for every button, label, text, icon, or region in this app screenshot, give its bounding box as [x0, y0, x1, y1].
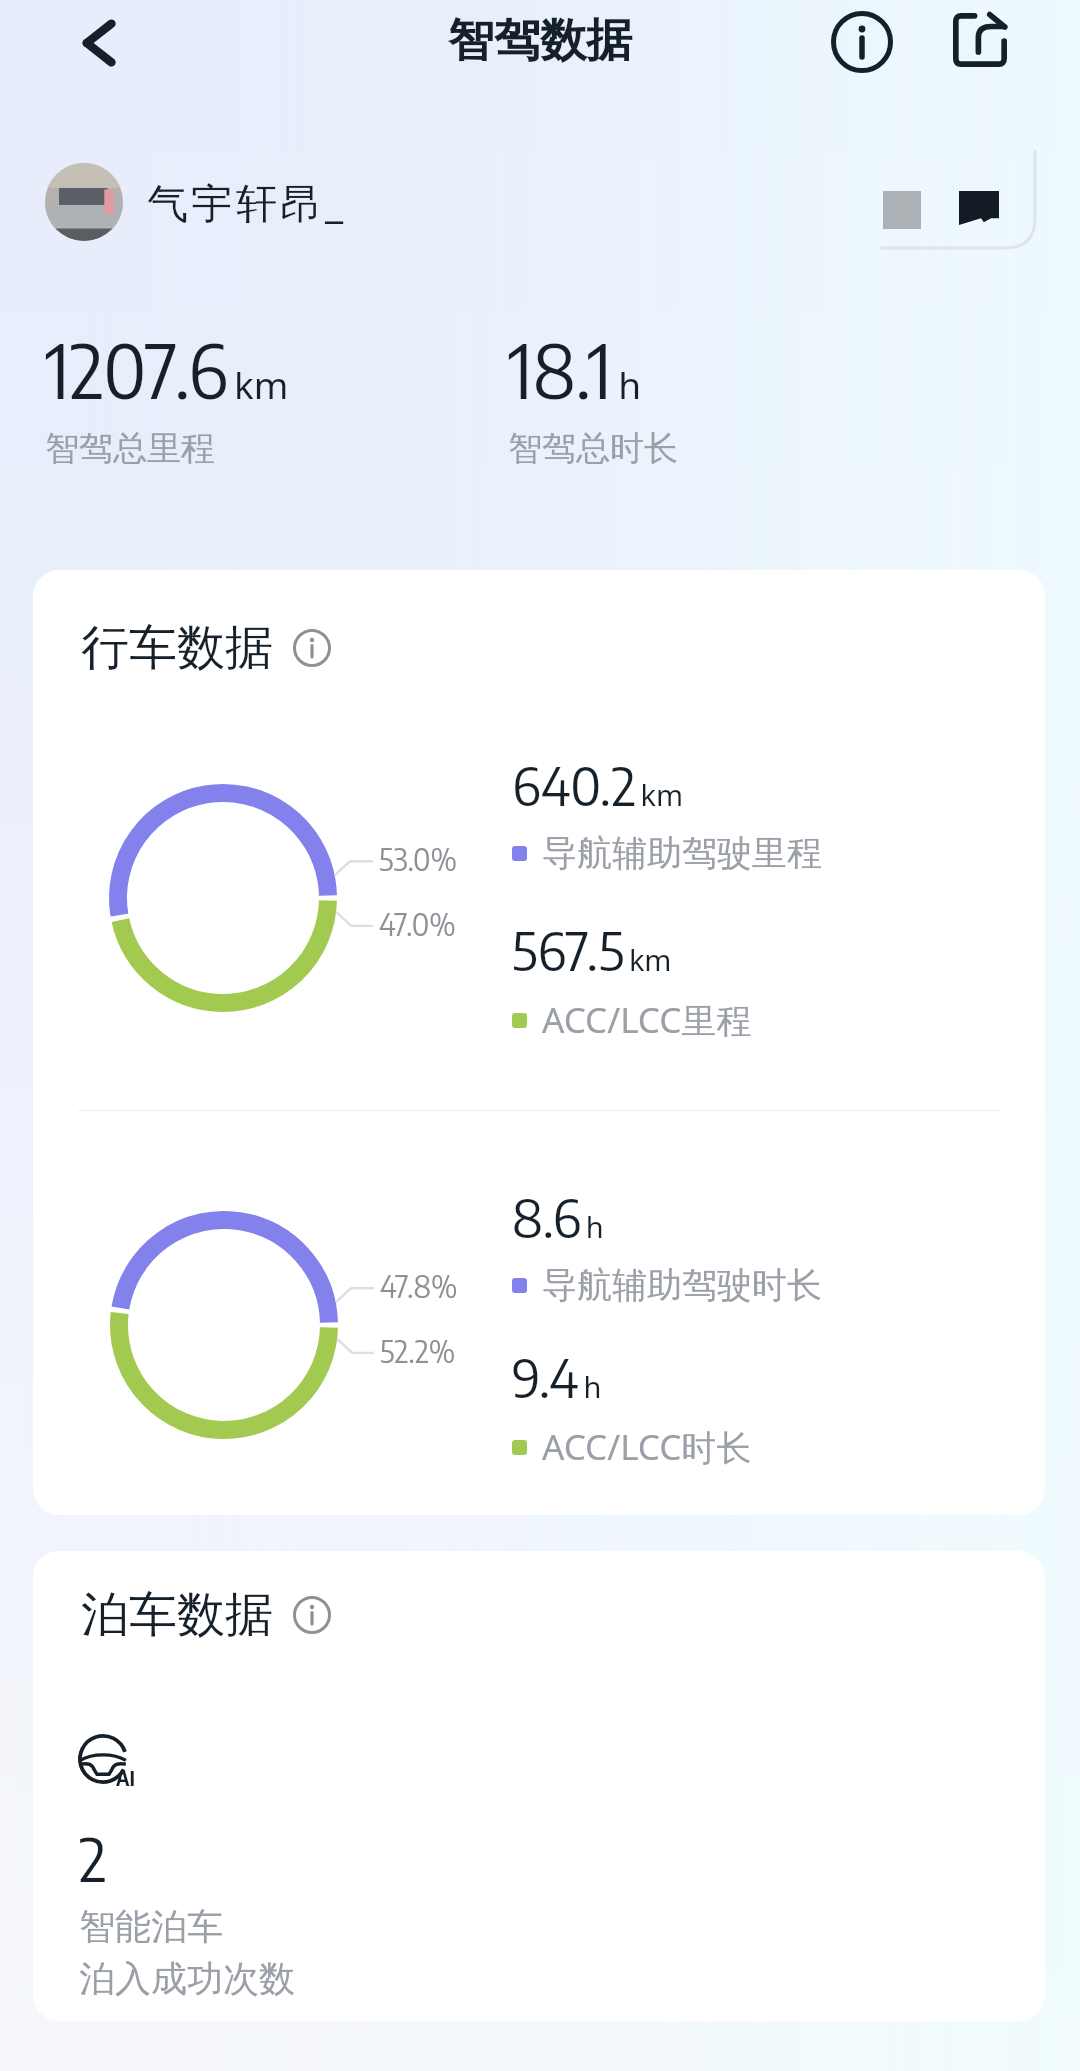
- button[interactable]: 气宇轩昂_: [45, 163, 347, 241]
- button[interactable]: Info: [291, 1594, 333, 1636]
- staticText: ACC/LCC时长: [542, 1423, 752, 1471]
- staticText: 智能泊车: [79, 1904, 223, 1949]
- staticText: 9.4 h: [512, 1343, 602, 1409]
- button[interactable]: Share: [948, 8, 1012, 72]
- staticText: AI: [116, 1765, 136, 1790]
- staticText: 泊车数据: [81, 1585, 273, 1645]
- staticText: 气宇轩昂_: [147, 174, 347, 230]
- staticText: ACC/LCC里程: [542, 996, 752, 1044]
- staticText: 47.8%: [380, 1267, 458, 1304]
- staticText: 智驾总里程: [45, 427, 215, 470]
- staticText: 行车数据: [81, 618, 273, 678]
- staticText: 52.2%: [380, 1332, 456, 1369]
- staticText: 1207.6 km: [45, 323, 289, 416]
- staticText: 2: [79, 1820, 107, 1895]
- staticText: 智驾总时长: [508, 427, 678, 470]
- staticText: 53.0%: [379, 840, 458, 877]
- staticText: 567.5 km: [512, 916, 672, 982]
- staticText: 47.0%: [379, 905, 456, 942]
- staticText: 智驾数据: [448, 12, 632, 70]
- button[interactable]: Back: [71, 14, 129, 72]
- button[interactable]: Info: [828, 8, 896, 76]
- staticText: 8.6 h: [512, 1183, 604, 1249]
- staticText: 导航辅助驾驶里程: [542, 831, 822, 875]
- staticText: 18.1 h: [508, 323, 642, 416]
- staticText: 640.2 km: [512, 751, 684, 817]
- staticText: 泊入成功次数: [79, 1956, 295, 2001]
- button[interactable]: Info: [291, 627, 333, 669]
- staticText: 导航辅助驾驶时长: [542, 1263, 822, 1307]
